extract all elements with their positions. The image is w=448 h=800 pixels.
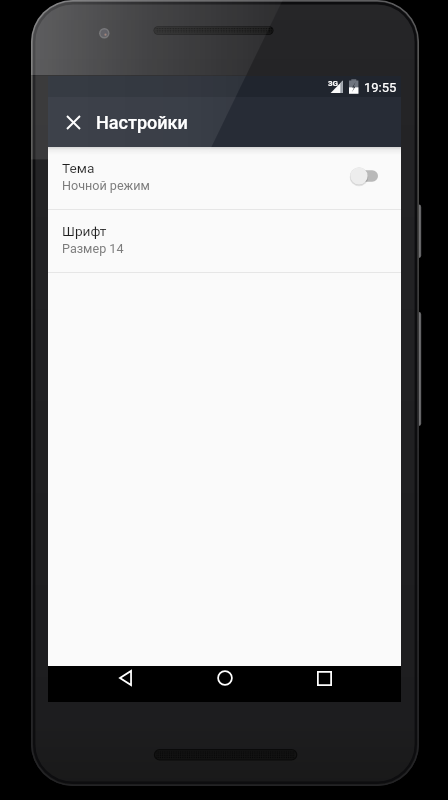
button[interactable]: Ночной режим [351, 164, 387, 188]
button[interactable]: Home [201, 660, 249, 696]
staticText: Размер 14 [62, 241, 124, 256]
staticText: 19:55 [364, 80, 397, 95]
staticText: Тема [62, 160, 95, 176]
staticText: Настройки [96, 112, 188, 133]
staticText: Шрифт [62, 223, 107, 239]
staticText: 3G [328, 79, 339, 88]
button[interactable]: Тема [48, 147, 401, 209]
button[interactable]: Close [48, 97, 98, 147]
button[interactable]: Back [101, 660, 149, 696]
button[interactable]: Шрифт [48, 210, 401, 272]
button[interactable]: Recent apps [300, 660, 348, 696]
staticText: Ночной режим [62, 178, 150, 193]
